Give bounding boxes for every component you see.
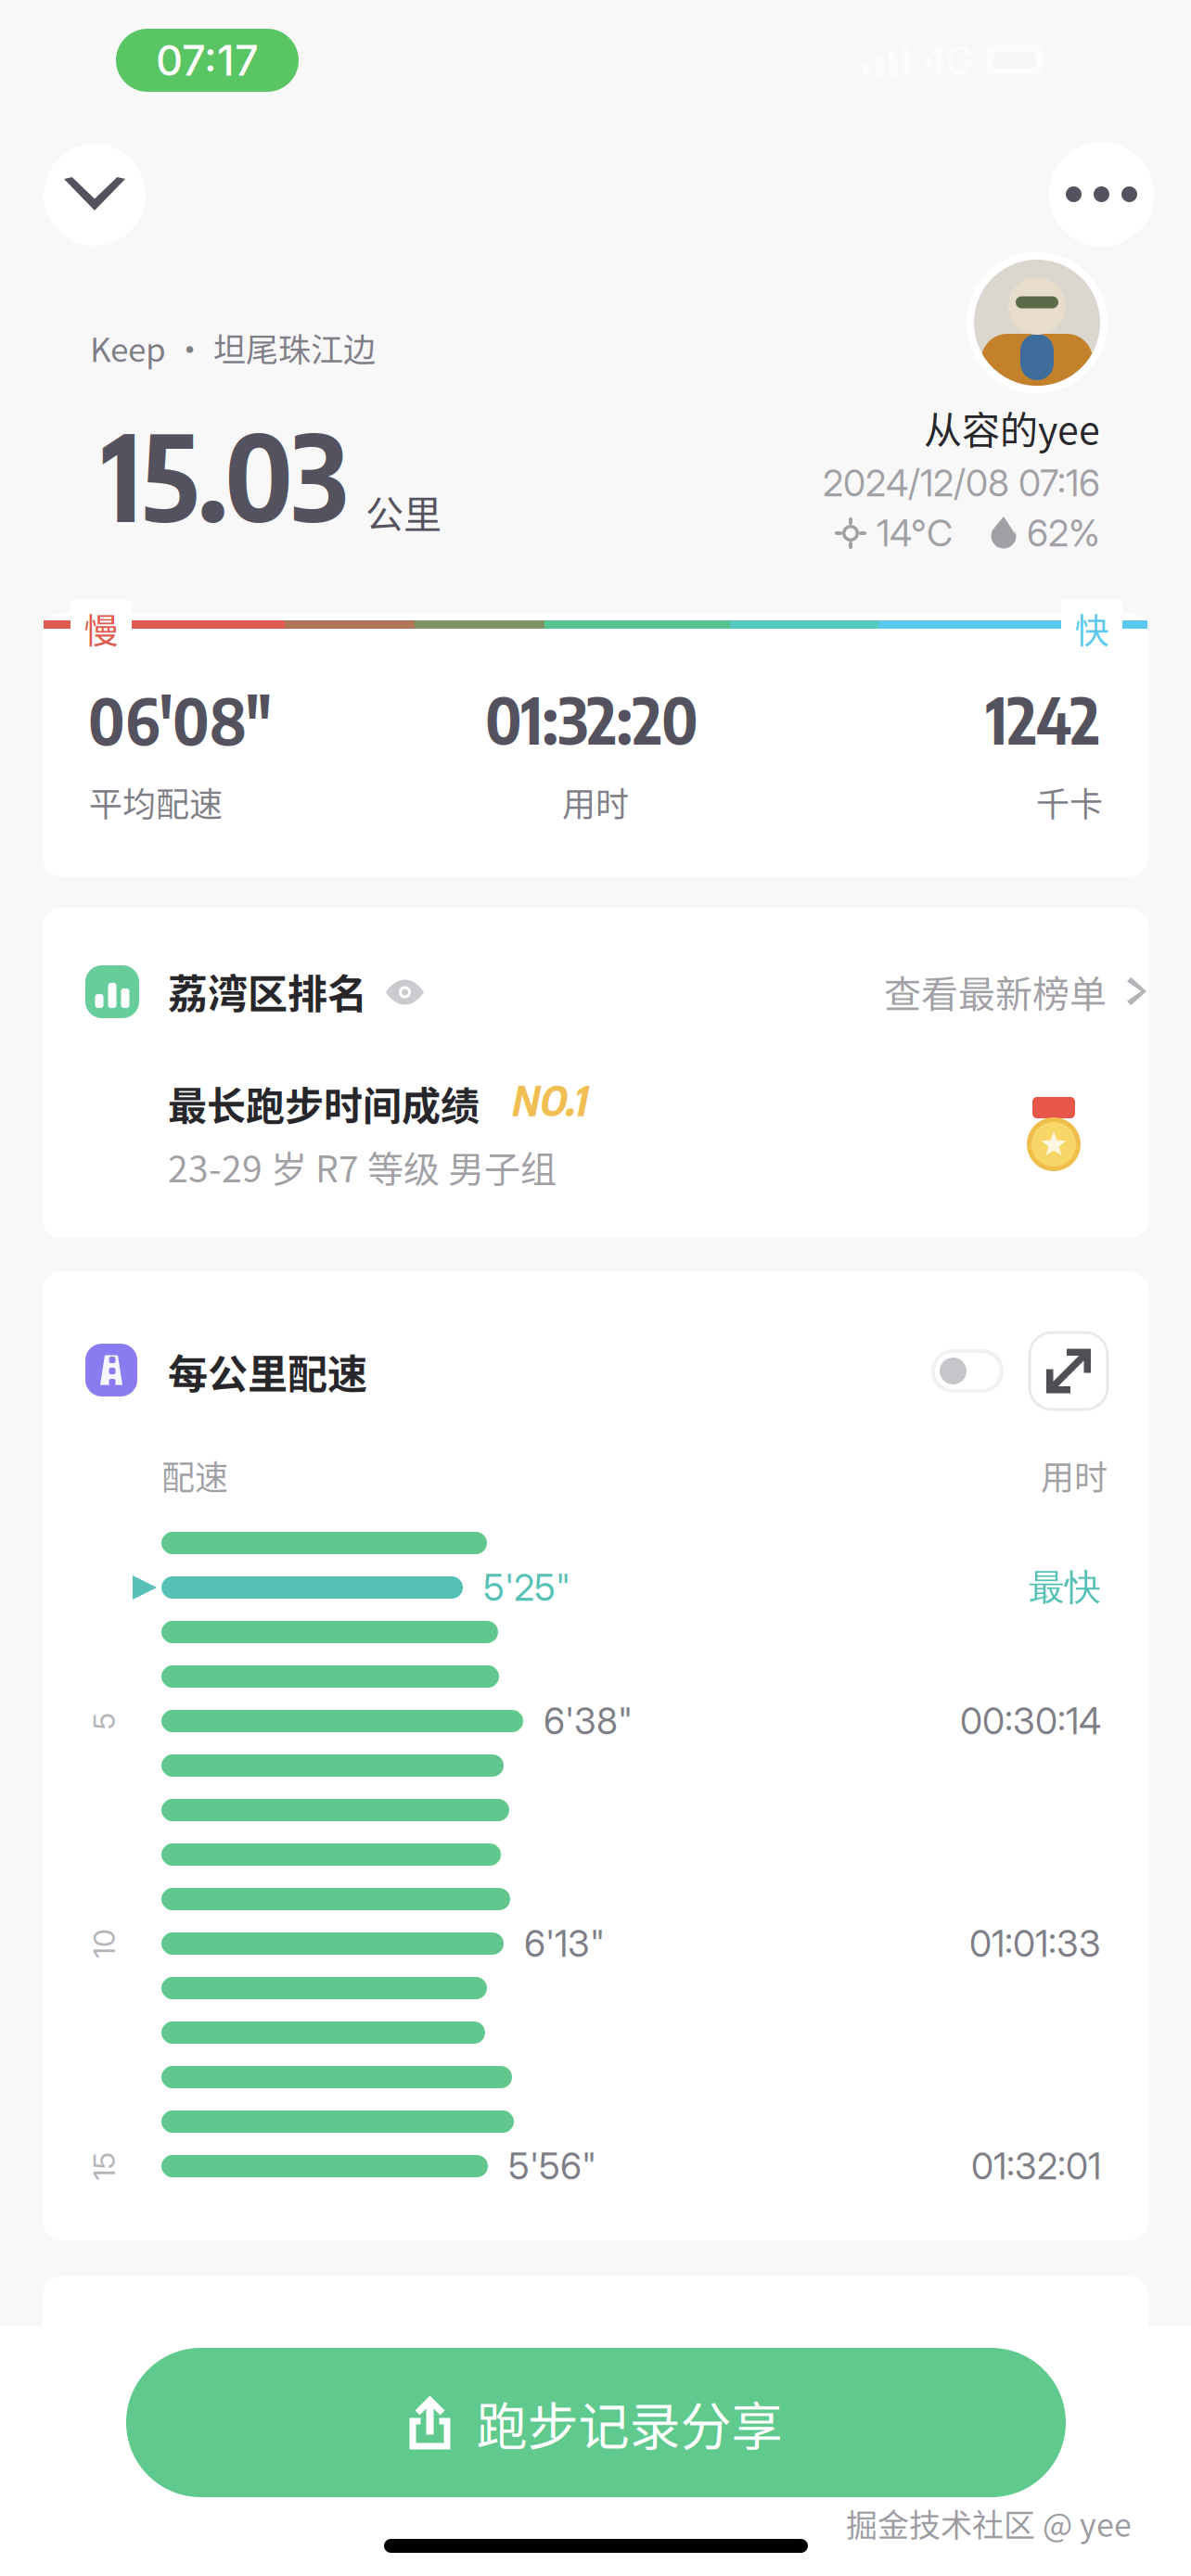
staticText: 快 (1075, 604, 1109, 654)
staticText: 用时 (1041, 1451, 1108, 1499)
staticText: 2024/12/08 07:16 (823, 461, 1100, 505)
button[interactable]: Toggle pace detail (931, 1349, 1004, 1393)
button[interactable]: 查看最新榜单 (884, 964, 1146, 1018)
staticText: 01:01:33 (969, 1922, 1101, 1966)
staticText: 每公里配速 (168, 1343, 367, 1400)
staticText: 6'38" (544, 1699, 633, 1743)
staticText: 用时 (562, 778, 629, 826)
staticText: 07:17 (156, 35, 259, 85)
staticText: Keep · 坦尾珠江边 (90, 324, 376, 371)
staticText: 荔湾区排名 (168, 962, 367, 1020)
staticText: 从容的yee (924, 400, 1100, 455)
button[interactable]: More options (1049, 142, 1154, 247)
staticText: 62% (1027, 511, 1100, 555)
staticText: 01:32:01 (971, 2144, 1101, 2188)
staticText: 跑步记录分享 (476, 2386, 782, 2459)
button[interactable]: Collapse (44, 144, 146, 246)
button[interactable]: Expand chart (1030, 1333, 1108, 1409)
staticText: 1242 (986, 680, 1100, 759)
staticText: 慢 (84, 604, 118, 654)
staticText: 15.03 (102, 401, 348, 548)
staticText: 14°C (877, 511, 953, 555)
staticText: 最长跑步时间成绩 (168, 1075, 480, 1132)
staticText: 23-29 岁 R7 等级 男子组 (168, 1140, 557, 1193)
staticText: 千卡 (1036, 778, 1103, 826)
staticText: 10 (89, 1926, 119, 1961)
staticText: 01:32:20 (485, 680, 698, 759)
staticText: 最快 (1029, 1565, 1101, 1610)
button[interactable]: 跑步记录分享 (126, 2348, 1066, 2497)
staticText: NO.1 (510, 1074, 586, 1125)
staticText: 00:30:14 (960, 1699, 1101, 1743)
staticText: 15 (90, 2148, 118, 2184)
staticText: 查看最新榜单 (884, 964, 1107, 1018)
staticText: 6'13" (524, 1922, 605, 1966)
staticText: 5'25" (483, 1566, 570, 1609)
staticText: 5'56" (508, 2144, 596, 2188)
staticText: 5 (95, 1703, 113, 1739)
staticText: 掘金技术社区 @ yee (846, 2500, 1132, 2546)
staticText: 公里 (365, 484, 442, 539)
staticText: 平均配速 (89, 778, 223, 826)
staticText: 配速 (161, 1451, 228, 1499)
staticText: 06'08" (88, 681, 271, 759)
